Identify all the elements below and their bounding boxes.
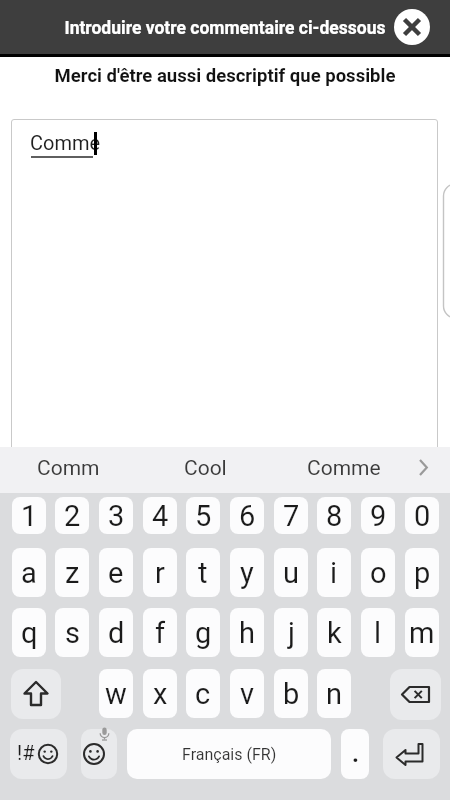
- button[interactable]: c: [186, 669, 220, 718]
- staticText: z: [65, 556, 80, 590]
- staticText: h: [239, 616, 255, 650]
- staticText: Comme: [307, 456, 381, 481]
- button[interactable]: 2: [55, 497, 89, 534]
- staticText: Merci d'être aussi descriptif que possib…: [0, 65, 450, 95]
- staticText: f: [155, 616, 166, 650]
- button[interactable]: 9: [361, 497, 395, 534]
- button[interactable]: l: [361, 608, 395, 657]
- button[interactable]: Cool: [137, 450, 274, 486]
- staticText: v: [240, 677, 255, 711]
- button[interactable]: 5: [186, 497, 220, 534]
- button[interactable]: p: [405, 548, 439, 597]
- button[interactable]: b: [274, 669, 308, 718]
- staticText: 4: [152, 499, 169, 533]
- button[interactable]: [408, 452, 438, 482]
- staticText: d: [108, 616, 125, 650]
- button[interactable]: y: [230, 548, 264, 597]
- button[interactable]: [383, 729, 440, 779]
- button[interactable]: 8: [317, 497, 351, 534]
- button[interactable]: o: [361, 548, 395, 597]
- button[interactable]: [390, 669, 441, 720]
- button[interactable]: f: [143, 608, 177, 657]
- staticText: a: [21, 556, 37, 590]
- staticText: l: [374, 616, 382, 650]
- button[interactable]: 6: [230, 497, 264, 534]
- staticText: 2: [64, 499, 81, 533]
- staticText: r: [155, 556, 165, 590]
- button[interactable]: 7: [274, 497, 308, 534]
- button[interactable]: i: [317, 548, 351, 597]
- staticText: s: [65, 616, 80, 650]
- button[interactable]: Français (FR): [127, 729, 331, 779]
- button[interactable]: 4: [143, 497, 177, 534]
- button[interactable]: Comme: [274, 450, 413, 486]
- staticText: j: [288, 616, 295, 650]
- staticText: k: [327, 616, 342, 650]
- staticText: y: [240, 556, 254, 590]
- staticText: i: [330, 556, 338, 590]
- button[interactable]: v: [230, 669, 264, 718]
- button[interactable]: [11, 119, 438, 569]
- staticText: 3: [108, 499, 125, 533]
- staticText: .: [352, 740, 359, 768]
- staticText: g: [195, 616, 212, 650]
- staticText: c: [195, 677, 211, 711]
- staticText: 6: [239, 499, 256, 533]
- staticText: Comme: [30, 131, 101, 154]
- staticText: !#: [17, 741, 35, 764]
- button[interactable]: e: [99, 548, 133, 597]
- staticText: Introduire votre commentaire ci-dessous: [0, 18, 450, 46]
- button[interactable]: d: [99, 608, 133, 657]
- button[interactable]: 0: [405, 497, 439, 534]
- staticText: 5: [195, 499, 212, 533]
- button[interactable]: Comm: [0, 450, 137, 486]
- staticText: e: [108, 556, 124, 590]
- button[interactable]: [81, 729, 117, 779]
- staticText: q: [21, 616, 38, 650]
- button[interactable]: a: [12, 548, 46, 597]
- button[interactable]: z: [55, 548, 89, 597]
- button[interactable]: k: [317, 608, 351, 657]
- staticText: 0: [414, 499, 431, 533]
- staticText: x: [153, 677, 168, 711]
- staticText: Français (FR): [182, 745, 277, 764]
- staticText: Cool: [184, 456, 227, 481]
- staticText: 7: [283, 499, 300, 533]
- staticText: u: [283, 556, 299, 590]
- button[interactable]: s: [55, 608, 89, 657]
- button[interactable]: u: [274, 548, 308, 597]
- staticText: b: [283, 677, 300, 711]
- staticText: Comm: [37, 456, 100, 481]
- button[interactable]: [394, 9, 430, 45]
- button[interactable]: q: [12, 608, 46, 657]
- button[interactable]: n: [317, 669, 351, 718]
- button[interactable]: .: [341, 729, 369, 779]
- button[interactable]: 1: [12, 497, 46, 534]
- button[interactable]: !#: [10, 729, 67, 779]
- staticText: 9: [370, 499, 387, 533]
- button[interactable]: x: [143, 669, 177, 718]
- staticText: n: [326, 677, 343, 711]
- staticText: o: [370, 556, 387, 590]
- staticText: t: [198, 556, 208, 590]
- button[interactable]: j: [274, 608, 308, 657]
- button[interactable]: g: [186, 608, 220, 657]
- button[interactable]: h: [230, 608, 264, 657]
- button[interactable]: [11, 669, 61, 719]
- button[interactable]: r: [143, 548, 177, 597]
- staticText: 1: [21, 499, 38, 533]
- button[interactable]: w: [99, 669, 133, 718]
- staticText: p: [414, 556, 431, 590]
- staticText: w: [105, 677, 127, 711]
- button[interactable]: m: [405, 608, 439, 657]
- button[interactable]: t: [186, 548, 220, 597]
- button[interactable]: 3: [99, 497, 133, 534]
- staticText: m: [409, 616, 435, 650]
- staticText: 8: [326, 499, 343, 533]
